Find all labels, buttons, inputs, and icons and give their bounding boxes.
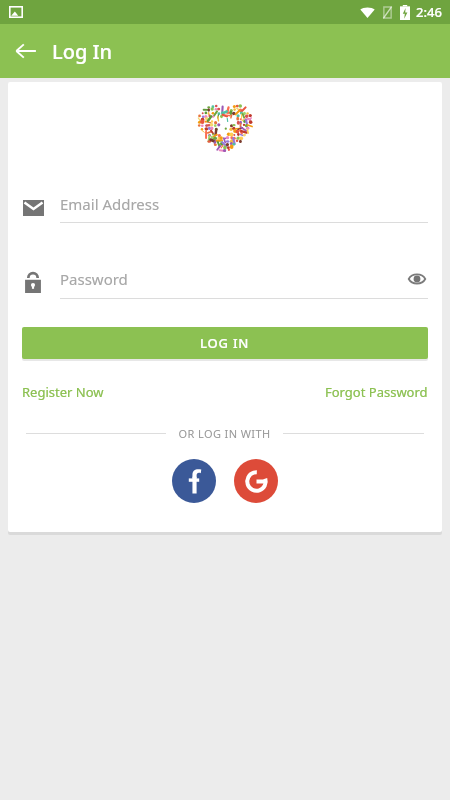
button[interactable]: Show password [406,268,428,290]
staticText: Register Now [22,383,104,401]
button[interactable]: Email Address [60,194,428,223]
staticText: Forgot Password [325,383,428,401]
staticText: LOG IN [200,334,250,352]
staticText: Email Address [60,194,428,214]
staticText: 2:46 [416,3,442,21]
staticText: OR LOG IN WITH [178,426,271,441]
staticText: Log In [52,38,113,65]
button[interactable]: Back [6,31,46,71]
button[interactable]: LOG IN [22,327,428,359]
button[interactable]: Facebook login [172,459,216,503]
staticText: Password [60,269,406,289]
button[interactable]: Register Now [22,383,104,401]
button[interactable]: Forgot Password [325,383,428,401]
button[interactable]: Password [60,268,428,299]
button[interactable]: Google login [234,459,278,503]
